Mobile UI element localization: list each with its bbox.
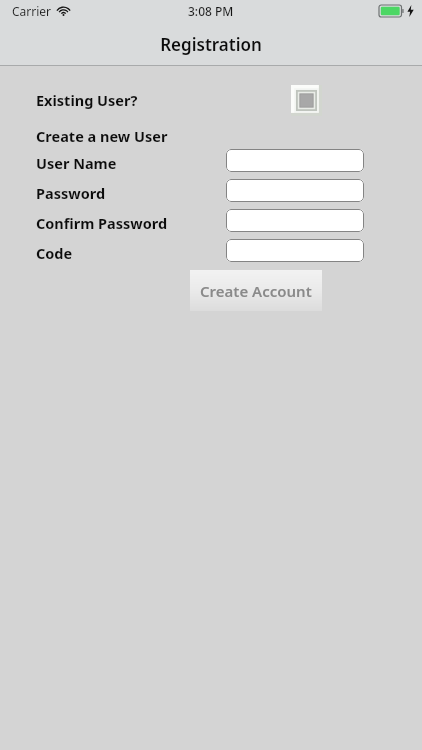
- staticText: Registration: [160, 33, 262, 56]
- button[interactable]: Password input field: [226, 179, 364, 202]
- staticText: User Name: [36, 153, 117, 173]
- staticText: Create a new User: [36, 126, 168, 146]
- staticText: 3:08 PM: [188, 3, 234, 19]
- button[interactable]: Create Account: [190, 270, 322, 311]
- staticText: Password: [36, 183, 106, 203]
- button[interactable]: Existing user checkbox: [291, 85, 322, 116]
- staticText: Create Account: [200, 281, 312, 301]
- staticText: Existing User?: [36, 90, 138, 110]
- button[interactable]: Code input field: [226, 239, 364, 262]
- staticText: Confirm Password: [36, 213, 168, 233]
- button[interactable]: Confirm Password input field: [226, 209, 364, 232]
- button[interactable]: User Name input field: [226, 149, 364, 172]
- staticText: Carrier: [12, 3, 52, 19]
- staticText: Code: [36, 243, 73, 263]
